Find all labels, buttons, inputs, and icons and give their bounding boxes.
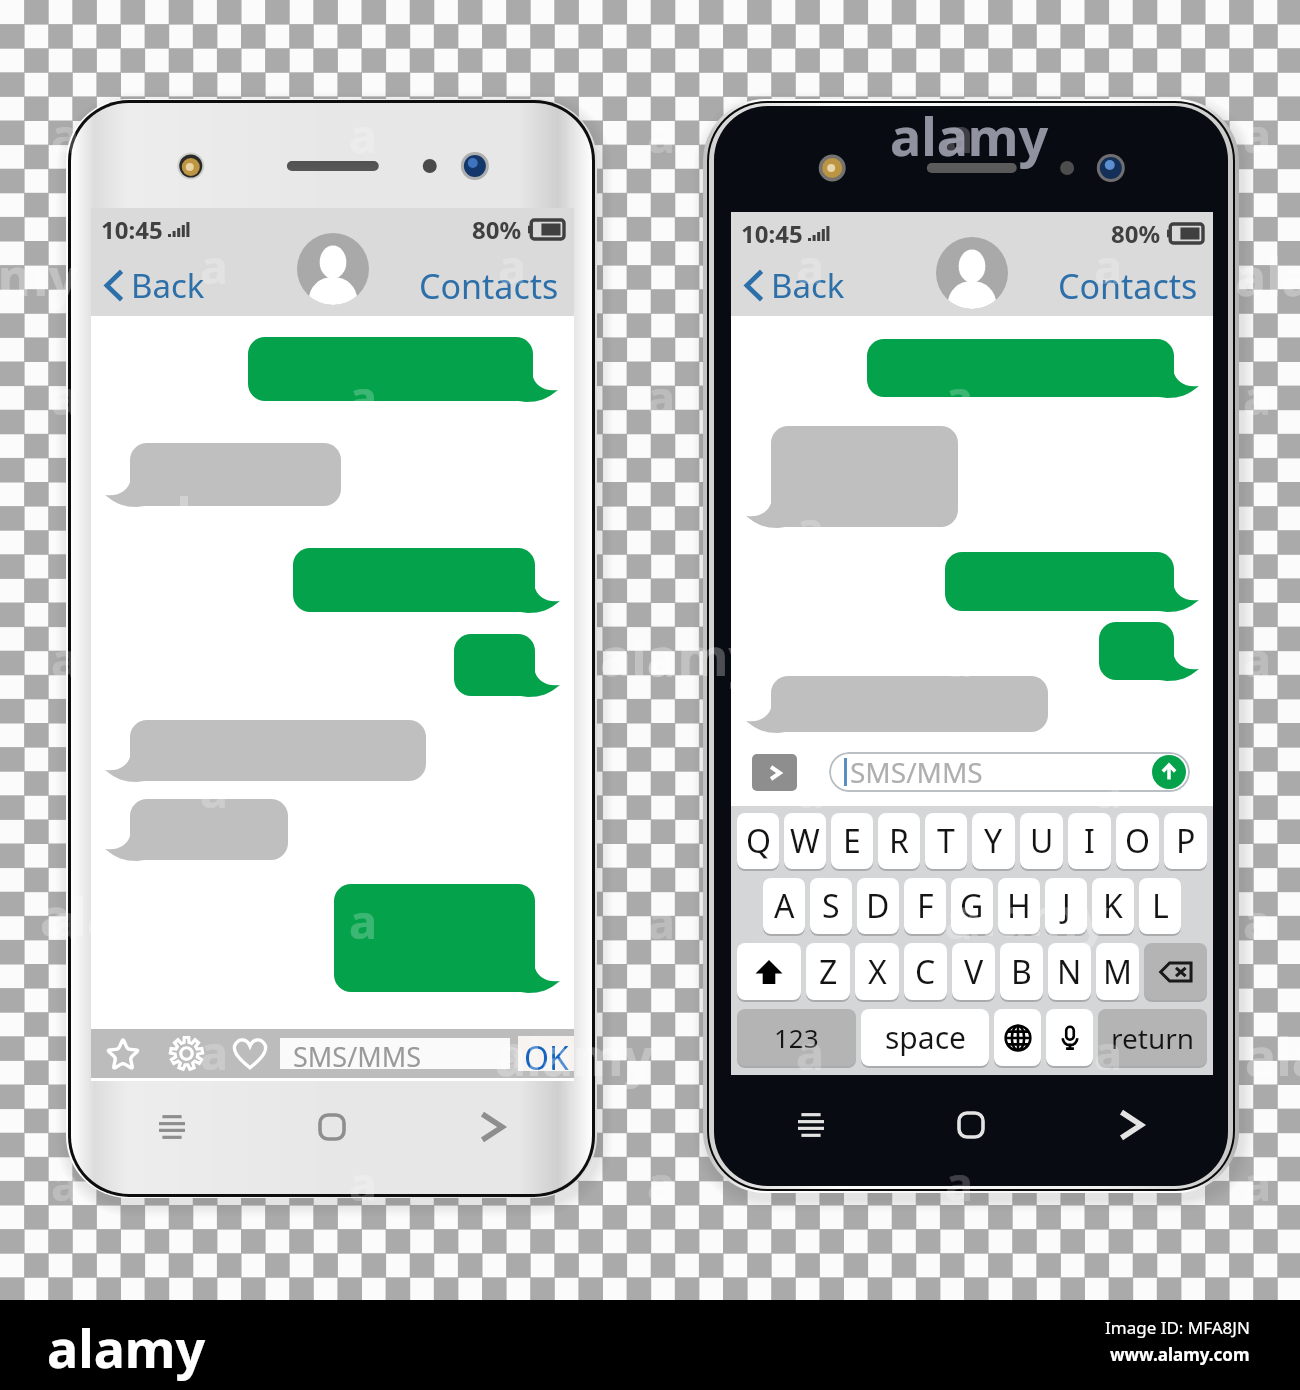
button[interactable]: Settings — [160, 1029, 212, 1078]
staticText: a — [349, 103, 378, 167]
button[interactable]: C — [904, 943, 947, 1000]
button[interactable]: O — [1116, 813, 1159, 869]
button[interactable]: W — [784, 813, 826, 869]
staticText: alamy — [47, 1312, 206, 1383]
staticText: alamy — [950, 880, 1109, 951]
staticText: a — [647, 627, 676, 691]
staticText: a — [1243, 627, 1272, 691]
button[interactable]: Back — [1091, 1097, 1171, 1153]
staticText: a — [945, 627, 974, 691]
staticText: a — [1094, 758, 1123, 822]
button[interactable]: Contacts — [1058, 263, 1198, 307]
button[interactable]: E — [831, 813, 873, 869]
button[interactable]: H — [998, 878, 1040, 934]
button[interactable]: Back — [452, 1099, 532, 1155]
staticText: Z — [819, 950, 838, 994]
button[interactable]: Home — [292, 1099, 372, 1155]
staticText: S — [822, 884, 840, 928]
button[interactable]: I — [1068, 813, 1111, 869]
staticText: C — [915, 950, 936, 994]
staticText: W — [790, 819, 820, 863]
staticText: Y — [984, 819, 1003, 863]
button[interactable]: L — [1139, 878, 1181, 934]
button[interactable]: OK — [518, 1036, 574, 1071]
staticText: a — [349, 365, 378, 429]
button[interactable]: P — [1164, 813, 1207, 869]
button[interactable]: Favourite — [97, 1029, 149, 1078]
staticText: a — [200, 234, 229, 298]
staticText: Contacts — [419, 263, 559, 307]
button[interactable]: F — [904, 878, 946, 934]
staticText: P — [1176, 819, 1196, 863]
button[interactable]: Back — [745, 263, 845, 307]
staticText: a — [51, 1151, 80, 1215]
staticText: a — [945, 103, 974, 167]
button[interactable]: Shift — [737, 943, 801, 1000]
button[interactable]: Z — [806, 943, 850, 1000]
button[interactable]: SMS/MMS — [829, 752, 1190, 792]
staticText: www.alamy.com — [1110, 1343, 1250, 1366]
button[interactable]: 123 — [737, 1009, 856, 1066]
button[interactable]: Send — [1152, 755, 1186, 789]
staticText: a — [796, 496, 825, 560]
button[interactable]: B — [1000, 943, 1043, 1000]
button[interactable]: Contact avatar — [297, 233, 369, 305]
button[interactable]: space — [861, 1009, 989, 1066]
staticText: SMS/MMS — [293, 1038, 421, 1069]
staticText: a — [1094, 1020, 1123, 1084]
staticText: a — [796, 758, 825, 822]
button[interactable]: S — [810, 878, 852, 934]
staticText: a — [498, 496, 527, 560]
staticText: OK — [524, 1036, 569, 1071]
button[interactable]: Contacts — [419, 263, 559, 307]
button[interactable]: Q — [737, 813, 779, 869]
staticText: R — [889, 819, 909, 863]
staticText: K — [1103, 884, 1123, 928]
button[interactable]: M — [1096, 943, 1139, 1000]
button[interactable]: Voice input — [1046, 1009, 1093, 1066]
staticText: a — [1243, 1151, 1272, 1215]
button[interactable]: R — [878, 813, 920, 869]
button[interactable]: V — [952, 943, 995, 1000]
button[interactable]: Backspace — [1144, 943, 1207, 1000]
button[interactable]: Expand — [752, 754, 797, 791]
button[interactable]: D — [857, 878, 899, 934]
button[interactable]: Recent apps — [132, 1099, 212, 1155]
staticText: F — [917, 884, 934, 928]
staticText: alamy — [890, 100, 1049, 171]
staticText: a — [200, 1020, 229, 1084]
staticText: a — [945, 365, 974, 429]
button[interactable]: Back — [105, 263, 205, 307]
staticText: a — [647, 365, 676, 429]
staticText: V — [964, 950, 984, 994]
staticText: B — [1011, 950, 1032, 994]
staticText: a — [51, 627, 80, 691]
button[interactable]: Language — [994, 1009, 1041, 1066]
staticText: D — [866, 884, 890, 928]
button[interactable]: Y — [972, 813, 1015, 869]
button[interactable]: T — [925, 813, 967, 869]
button[interactable]: return — [1098, 1009, 1207, 1066]
staticText: a — [945, 889, 974, 953]
staticText: J — [1062, 884, 1071, 928]
button[interactable]: U — [1020, 813, 1063, 869]
staticText: U — [1030, 819, 1054, 863]
staticText: H — [1007, 884, 1031, 928]
staticText: a — [945, 1151, 974, 1215]
staticText: a — [498, 1020, 527, 1084]
button[interactable]: J — [1045, 878, 1087, 934]
button[interactable]: K — [1092, 878, 1134, 934]
button[interactable]: G — [951, 878, 993, 934]
button[interactable]: Recent apps — [771, 1097, 851, 1153]
button[interactable]: SMS/MMS — [280, 1038, 510, 1069]
button[interactable]: A — [763, 878, 805, 934]
button[interactable]: N — [1048, 943, 1091, 1000]
staticText: a — [647, 889, 676, 953]
button[interactable]: X — [855, 943, 899, 1000]
button[interactable]: Contact avatar — [936, 237, 1008, 309]
button[interactable]: Home — [931, 1097, 1011, 1153]
staticText: Back — [771, 263, 845, 307]
button[interactable]: Like — [224, 1029, 276, 1078]
staticText: a — [647, 1151, 676, 1215]
